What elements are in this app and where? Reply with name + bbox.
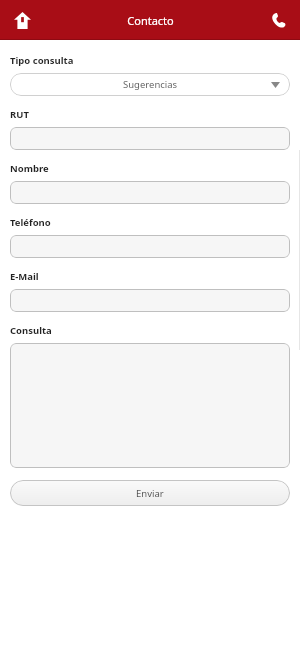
staticText: Consulta [10, 324, 52, 337]
staticText: Sugerencias [123, 78, 178, 91]
staticText: E-Mail [10, 270, 39, 283]
staticText: Tipo consulta [10, 54, 74, 67]
button[interactable]: Enviar [10, 480, 290, 506]
button[interactable] [10, 127, 290, 150]
staticText: Enviar [136, 487, 164, 500]
button[interactable] [10, 289, 290, 312]
staticText: Teléfono [10, 216, 51, 229]
button[interactable] [10, 343, 290, 468]
staticText: Nombre [10, 162, 49, 175]
button[interactable] [10, 181, 290, 204]
button[interactable]: Home [8, 6, 36, 34]
button[interactable]: Call [264, 6, 292, 34]
staticText: Contacto [127, 13, 174, 28]
button[interactable]: Sugerencias [10, 73, 290, 96]
staticText: RUT [10, 108, 29, 121]
button[interactable] [10, 235, 290, 258]
